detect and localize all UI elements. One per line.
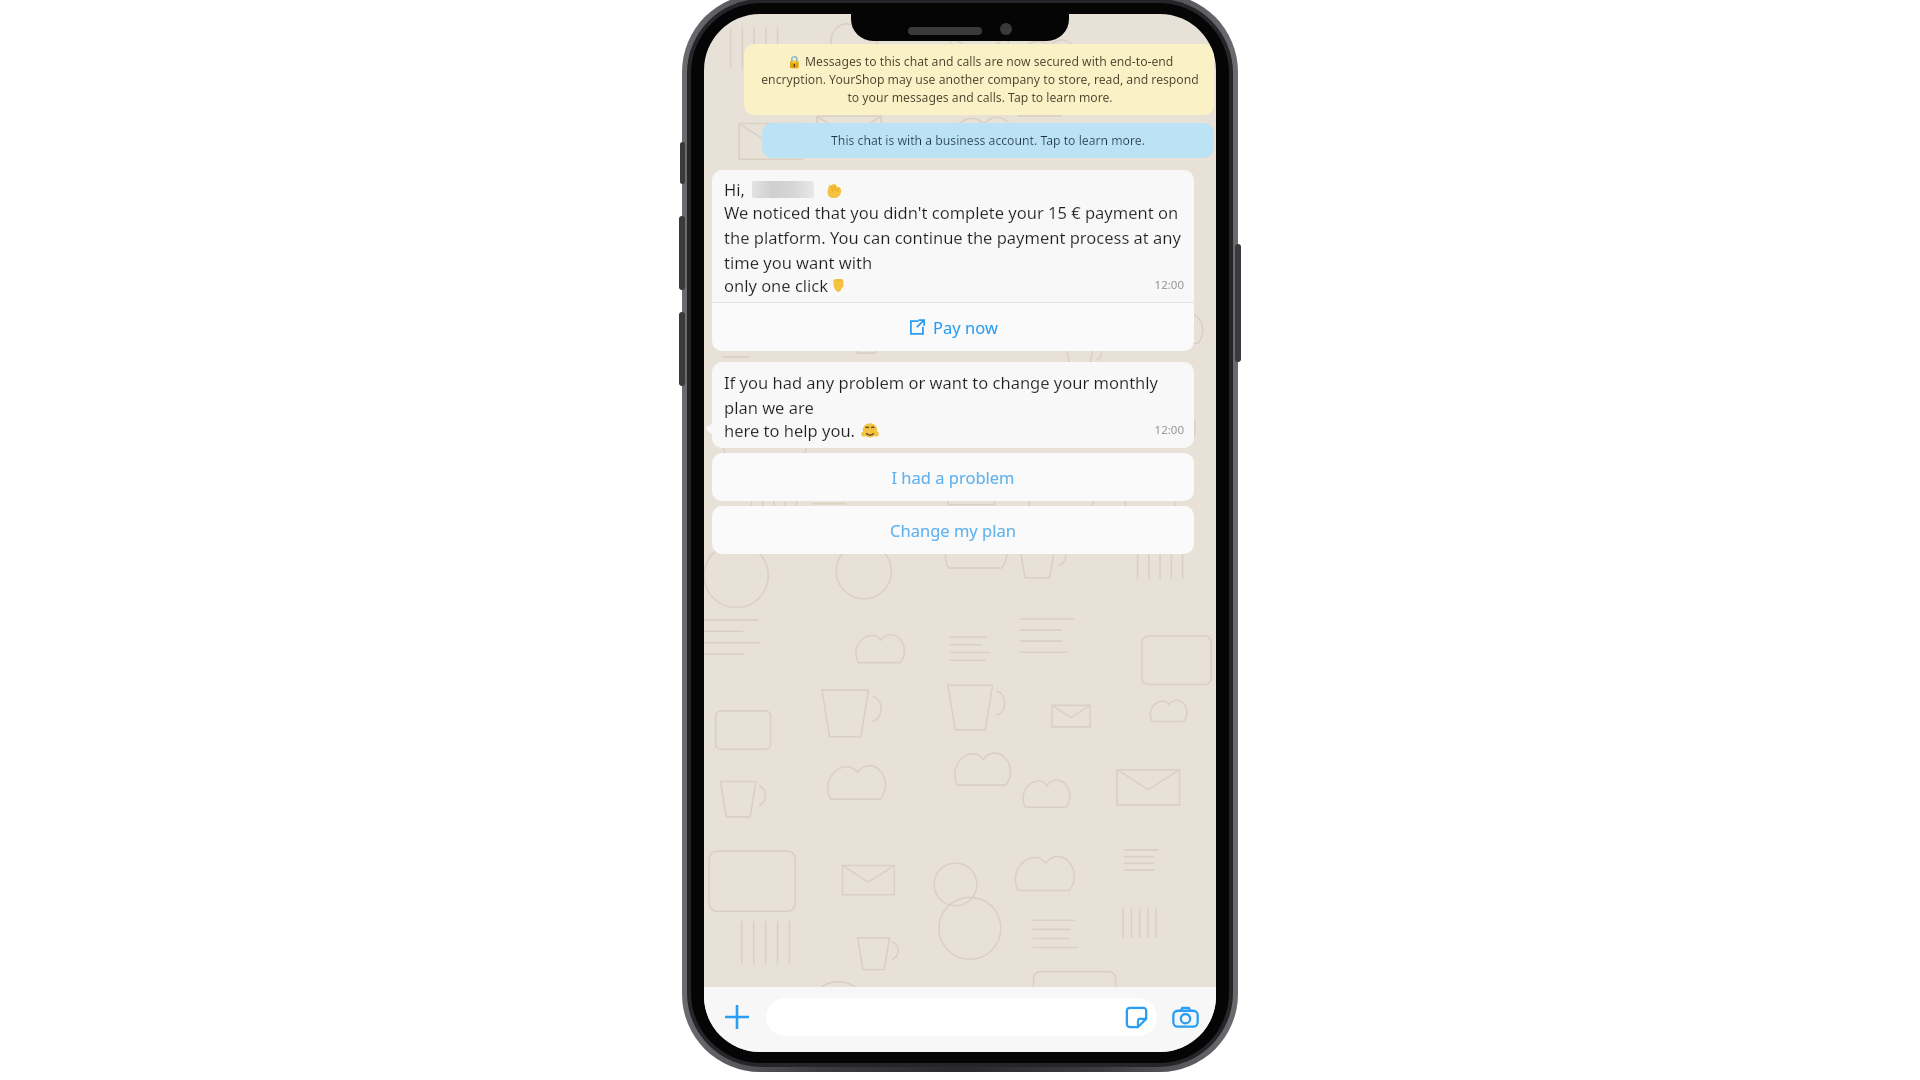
button[interactable]: 🔒 Messages to this chat and calls are no… <box>744 44 1214 115</box>
button[interactable]: Change my plan <box>712 506 1194 554</box>
button[interactable]: Camera <box>1168 1000 1202 1034</box>
staticText: If you had any problem or want to change… <box>724 371 1184 419</box>
staticText: Hi, <box>724 178 745 200</box>
staticText: only one click <box>724 274 829 296</box>
staticText: 🔒 Messages to this chat and calls are no… <box>758 53 1202 106</box>
button[interactable]: This chat is with a business account. Ta… <box>762 123 1214 158</box>
staticText: This chat is with a business account. Ta… <box>774 132 1202 149</box>
staticText: Change my plan <box>890 519 1016 541</box>
staticText: We noticed that you didn't complete your… <box>724 201 1184 274</box>
staticText: 12:00 <box>1154 277 1184 293</box>
button[interactable]: Stickers <box>1123 1004 1149 1030</box>
button[interactable]: Pay now <box>712 303 1194 351</box>
button[interactable]: Stickers <box>766 998 1157 1036</box>
staticText: I had a problem <box>891 466 1015 488</box>
staticText: Pay now <box>933 316 998 338</box>
button[interactable]: I had a problem <box>712 453 1194 501</box>
staticText: here to help you. <box>724 419 856 441</box>
staticText: 12:00 <box>1154 422 1184 438</box>
button[interactable]: Attach <box>720 1000 754 1034</box>
